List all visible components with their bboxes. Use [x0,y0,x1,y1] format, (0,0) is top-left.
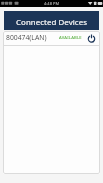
staticText: AVAILABLE [59,35,82,41]
button[interactable]: Power [85,32,97,44]
button[interactable]: 800474(LAN) [3,31,100,45]
button[interactable]: Connected Devices [4,11,99,30]
staticText: 800474(LAN) [6,33,47,42]
staticText: Connected Devices [16,17,87,28]
staticText: 4:48 PM [44,1,60,6]
